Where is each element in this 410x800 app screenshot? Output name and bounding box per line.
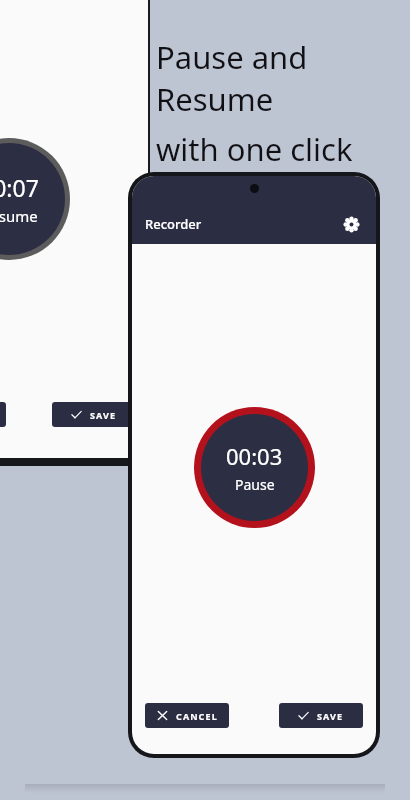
- staticText: with one click: [156, 128, 353, 170]
- button[interactable]: SAVE: [52, 402, 136, 427]
- button[interactable]: CANCEL: [145, 703, 229, 728]
- staticText: Resume: [0, 206, 38, 226]
- staticText: Recorder: [145, 215, 202, 233]
- staticText: Pause: [235, 475, 275, 494]
- button[interactable]: Settings: [338, 211, 364, 237]
- staticText: Pause and Resume: [156, 36, 410, 120]
- staticText: SAVE: [90, 409, 117, 421]
- button[interactable]: 00:07: [0, 138, 70, 260]
- button[interactable]: 00:03: [194, 407, 315, 528]
- staticText: CANCEL: [176, 710, 218, 722]
- staticText: SAVE: [317, 710, 344, 722]
- staticText: 00:03: [226, 441, 283, 471]
- button[interactable]: Cancel: [0, 402, 6, 427]
- button[interactable]: SAVE: [279, 703, 363, 728]
- staticText: 00:07: [0, 172, 39, 203]
